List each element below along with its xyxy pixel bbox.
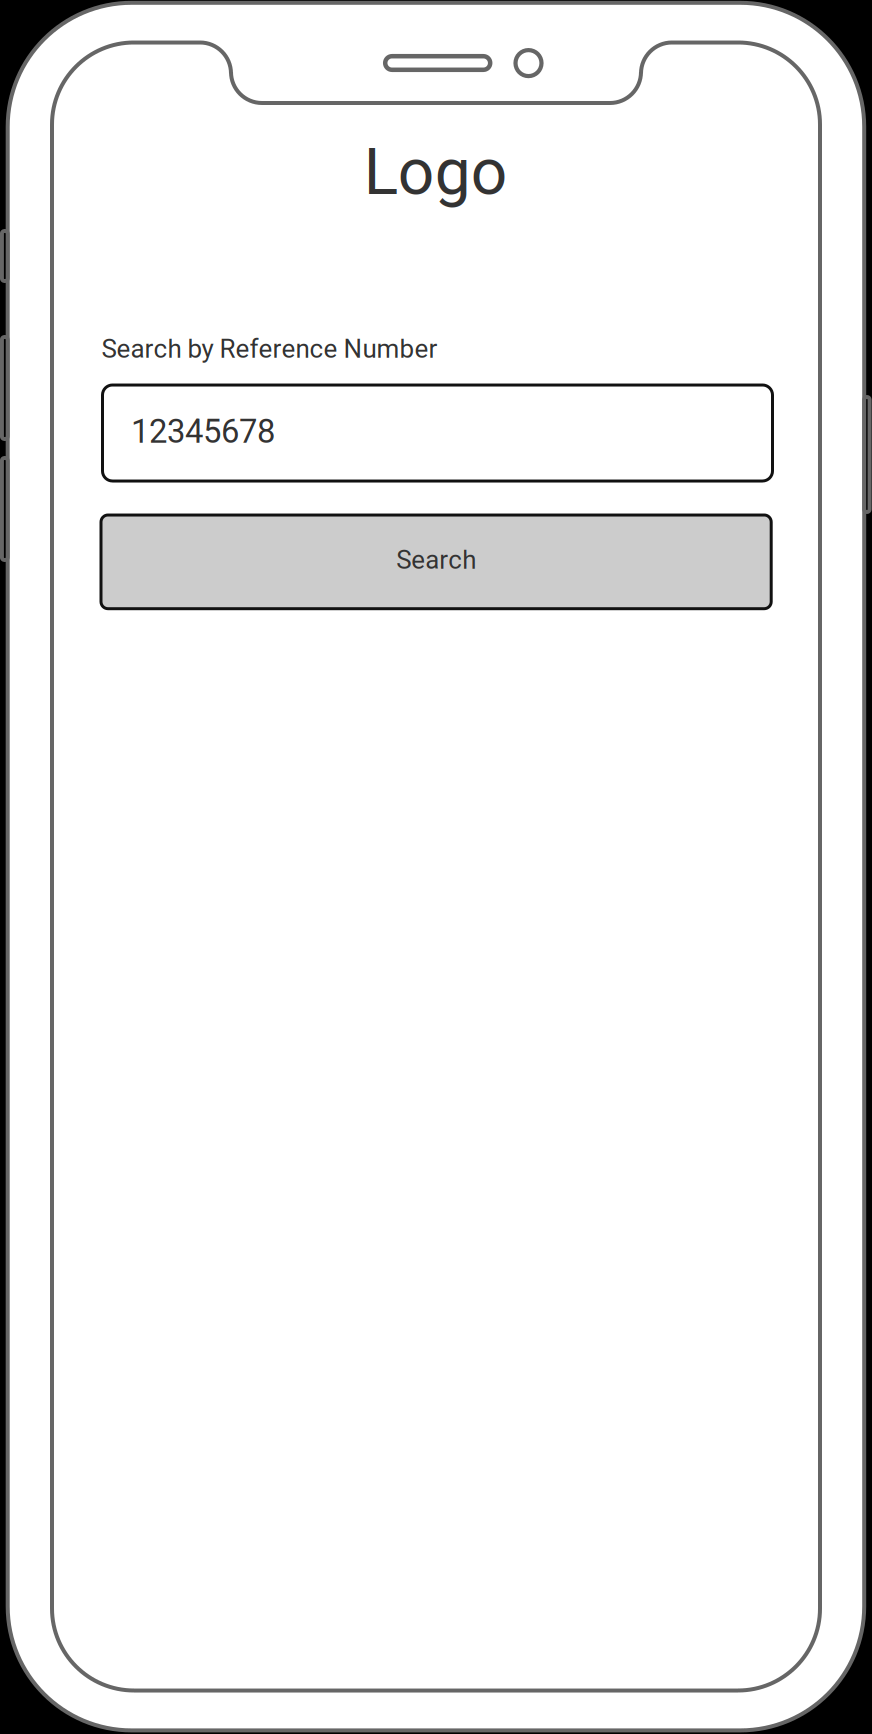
staticText: 12345678 bbox=[131, 412, 275, 451]
staticText: Search by Reference Number bbox=[101, 334, 437, 364]
staticText: Search bbox=[396, 545, 476, 575]
button[interactable]: 12345678 bbox=[102, 385, 772, 481]
staticText: Logo bbox=[364, 135, 508, 210]
button[interactable]: Search bbox=[101, 515, 771, 609]
